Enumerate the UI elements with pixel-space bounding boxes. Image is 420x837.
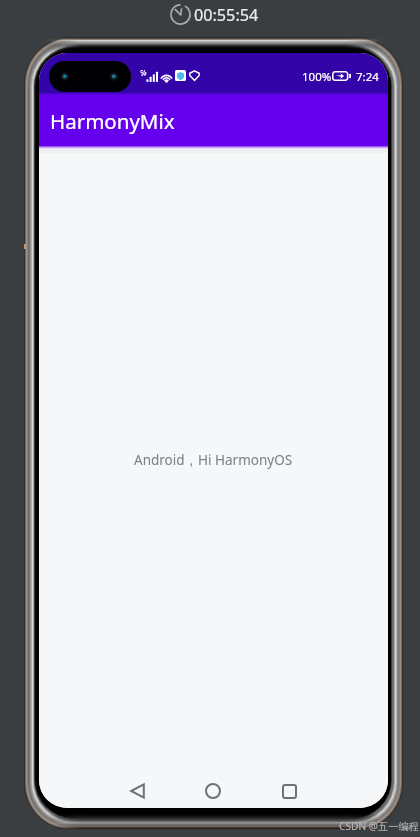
- staticText: CSDN @五一编程: [339, 819, 419, 833]
- button[interactable]: Recents: [261, 774, 317, 808]
- staticText: HarmonyMix: [50, 107, 175, 135]
- staticText: 7:24: [356, 69, 379, 85]
- button[interactable]: Home: [185, 774, 241, 808]
- button[interactable]: Back: [109, 774, 165, 808]
- staticText: 00:55:54: [194, 4, 259, 26]
- staticText: 100%: [302, 69, 332, 85]
- staticText: Android，Hi HarmonyOS: [134, 451, 293, 469]
